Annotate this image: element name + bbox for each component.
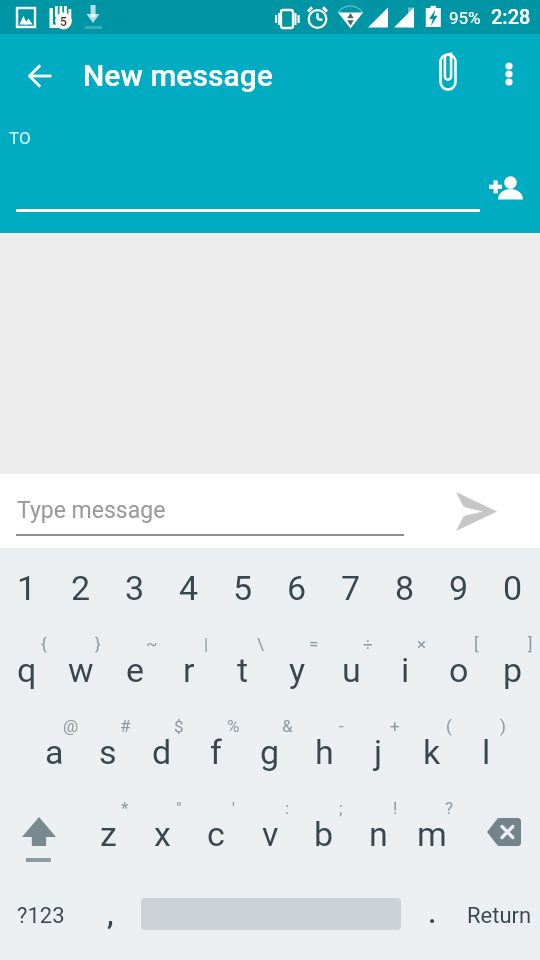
button[interactable]: $ [135,712,189,794]
staticText: * [121,798,129,818]
staticText: } [95,634,101,654]
button[interactable]: 8 [378,548,432,630]
staticText: 2 [71,568,91,608]
button[interactable]: 6 [270,548,324,630]
staticText: k [423,732,441,772]
button[interactable]: 0 [486,548,540,630]
staticText: - [339,716,344,736]
staticText: i [401,650,410,690]
staticText: y [289,650,306,690]
button[interactable]: Shift [0,794,81,876]
button[interactable]: * [81,794,135,876]
staticText: l [482,732,491,772]
staticText: . [428,895,437,930]
staticText: % [227,716,240,736]
button[interactable]: Add contact [484,176,528,220]
button[interactable]: 1 [0,548,54,630]
staticText: $ [174,716,184,736]
staticText: @ [63,716,79,736]
button[interactable]: Back [16,52,64,100]
button[interactable]: , [82,876,136,958]
staticText: m [417,814,447,854]
button[interactable]: ÷ [324,630,378,712]
button[interactable]: Space [136,876,406,958]
button[interactable]: 9 [432,548,486,630]
staticText: ( [446,716,452,736]
button[interactable]: + [351,712,405,794]
staticText: ~ [146,634,158,654]
staticText: 7 [341,568,361,608]
staticText: & [282,716,293,736]
staticText: 1 [17,568,37,608]
button[interactable]: : [243,794,297,876]
staticText: 4 [179,568,199,608]
staticText: b [314,814,334,854]
button[interactable]: 5 [216,548,270,630]
staticText: | [204,634,209,654]
button[interactable]: = [270,630,324,712]
button[interactable]: } [54,630,108,712]
staticText: ÷ [363,634,373,654]
button[interactable]: ~ [108,630,162,712]
button[interactable]: \ [216,630,270,712]
button[interactable]: Backspace [459,794,540,876]
button[interactable]: # [81,712,135,794]
button[interactable]: [ [432,630,486,712]
staticText: # [120,716,131,736]
staticText: TO [9,128,31,148]
staticText: Return [467,903,532,929]
button[interactable]: ?123 [0,876,82,958]
button[interactable]: 3 [108,548,162,630]
staticText: 5 [233,568,253,608]
button[interactable]: ' [189,794,243,876]
staticText: ' [232,798,235,818]
staticText: e [126,650,145,690]
button[interactable]: 2 [54,548,108,630]
button[interactable]: Send [438,482,496,540]
staticText: ) [500,716,506,736]
button[interactable]: @ [27,712,81,794]
staticText: Type message [17,497,166,524]
staticText: ? [445,798,454,818]
button[interactable]: × [378,630,432,712]
staticText: j [374,732,383,772]
staticText: g [260,732,280,772]
staticText: 3 [125,568,145,608]
button[interactable]: . [406,876,456,958]
staticText: d [152,732,172,772]
button[interactable]: " [135,794,189,876]
button[interactable]: ! [351,794,405,876]
button[interactable]: ( [405,712,459,794]
staticText: New message [83,58,273,93]
staticText: ! [393,798,398,818]
button[interactable]: ] [486,630,540,712]
button[interactable]: Return [456,876,540,958]
staticText: × [417,634,427,654]
staticText: 6 [287,568,307,608]
button[interactable]: { [0,630,54,712]
button[interactable]: & [243,712,297,794]
staticText: [ [474,634,479,654]
button[interactable]: ; [297,794,351,876]
staticText: p [503,650,523,690]
staticText: ] [528,634,533,654]
staticText: h [315,732,334,772]
staticText: x [154,814,171,854]
button[interactable]: 7 [324,548,378,630]
button[interactable]: | [162,630,216,712]
staticText: + [390,716,400,736]
staticText: : [285,798,290,818]
button[interactable]: More options [485,50,533,98]
button[interactable]: - [297,712,351,794]
button[interactable]: % [189,712,243,794]
staticText: " [176,798,182,818]
staticText: f [210,732,222,772]
button[interactable]: Attach file [424,48,472,96]
staticText: 0 [503,568,523,608]
staticText: , [107,896,114,931]
button[interactable]: ? [405,794,459,876]
staticText: = [309,634,319,654]
staticText: o [449,650,469,690]
button[interactable]: 4 [162,548,216,630]
button[interactable]: ) [459,712,513,794]
